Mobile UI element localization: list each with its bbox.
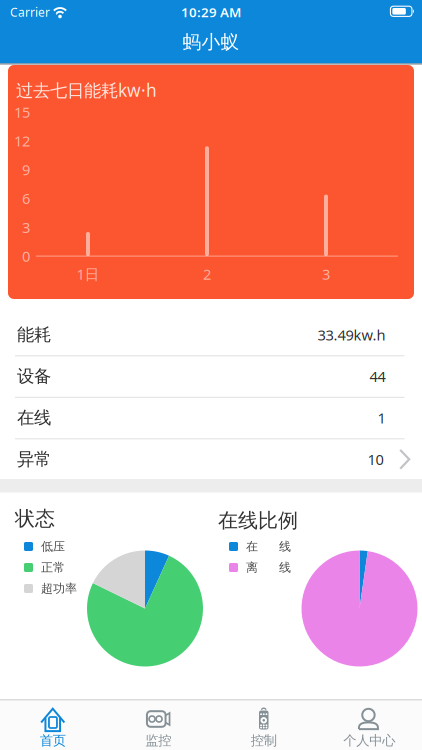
staticText: 在线比例: [218, 508, 298, 533]
staticText: 异常: [17, 449, 51, 470]
staticText: 12: [14, 131, 30, 151]
staticText: 3: [322, 264, 330, 284]
staticText: 15: [14, 102, 30, 122]
staticText: 超功率: [41, 581, 77, 596]
staticText: 状态: [15, 506, 55, 531]
staticText: 33.49kw.h: [317, 325, 385, 345]
button[interactable]: 异常: [0, 439, 422, 480]
staticText: 控制: [251, 732, 277, 749]
staticText: Carrier: [10, 4, 50, 20]
staticText: 2: [203, 264, 211, 284]
button[interactable]: 设备: [0, 356, 422, 397]
staticText: 线: [279, 560, 291, 575]
staticText: 6: [22, 189, 30, 208]
staticText: 0: [22, 246, 30, 266]
staticText: 在: [246, 539, 258, 554]
staticText: 个人中心: [343, 732, 395, 749]
button[interactable]: 首页: [0, 700, 105, 750]
staticText: 1: [377, 408, 385, 428]
staticText: 44: [369, 367, 385, 386]
staticText: 首页: [40, 732, 66, 749]
staticText: 监控: [145, 732, 171, 749]
button[interactable]: 监控: [105, 700, 211, 750]
staticText: 10: [367, 450, 383, 469]
staticText: 在线: [17, 407, 51, 428]
staticText: 设备: [17, 366, 51, 387]
staticText: 3: [22, 217, 30, 237]
staticText: 能耗: [17, 324, 51, 345]
button[interactable]: 能耗: [0, 314, 422, 356]
staticText: 离: [246, 560, 258, 575]
button[interactable]: 控制: [211, 700, 316, 750]
staticText: 9: [22, 160, 30, 179]
staticText: 10:29 AM: [181, 3, 241, 21]
staticText: 低压: [41, 539, 65, 554]
staticText: 蚂小蚁: [182, 30, 239, 53]
staticText: 1日: [76, 264, 99, 284]
staticText: 线: [279, 539, 291, 554]
staticText: 过去七日能耗kw·h: [16, 78, 157, 101]
staticText: 正常: [41, 560, 65, 575]
button[interactable]: 个人中心: [316, 700, 422, 750]
button[interactable]: 在线: [0, 397, 422, 439]
